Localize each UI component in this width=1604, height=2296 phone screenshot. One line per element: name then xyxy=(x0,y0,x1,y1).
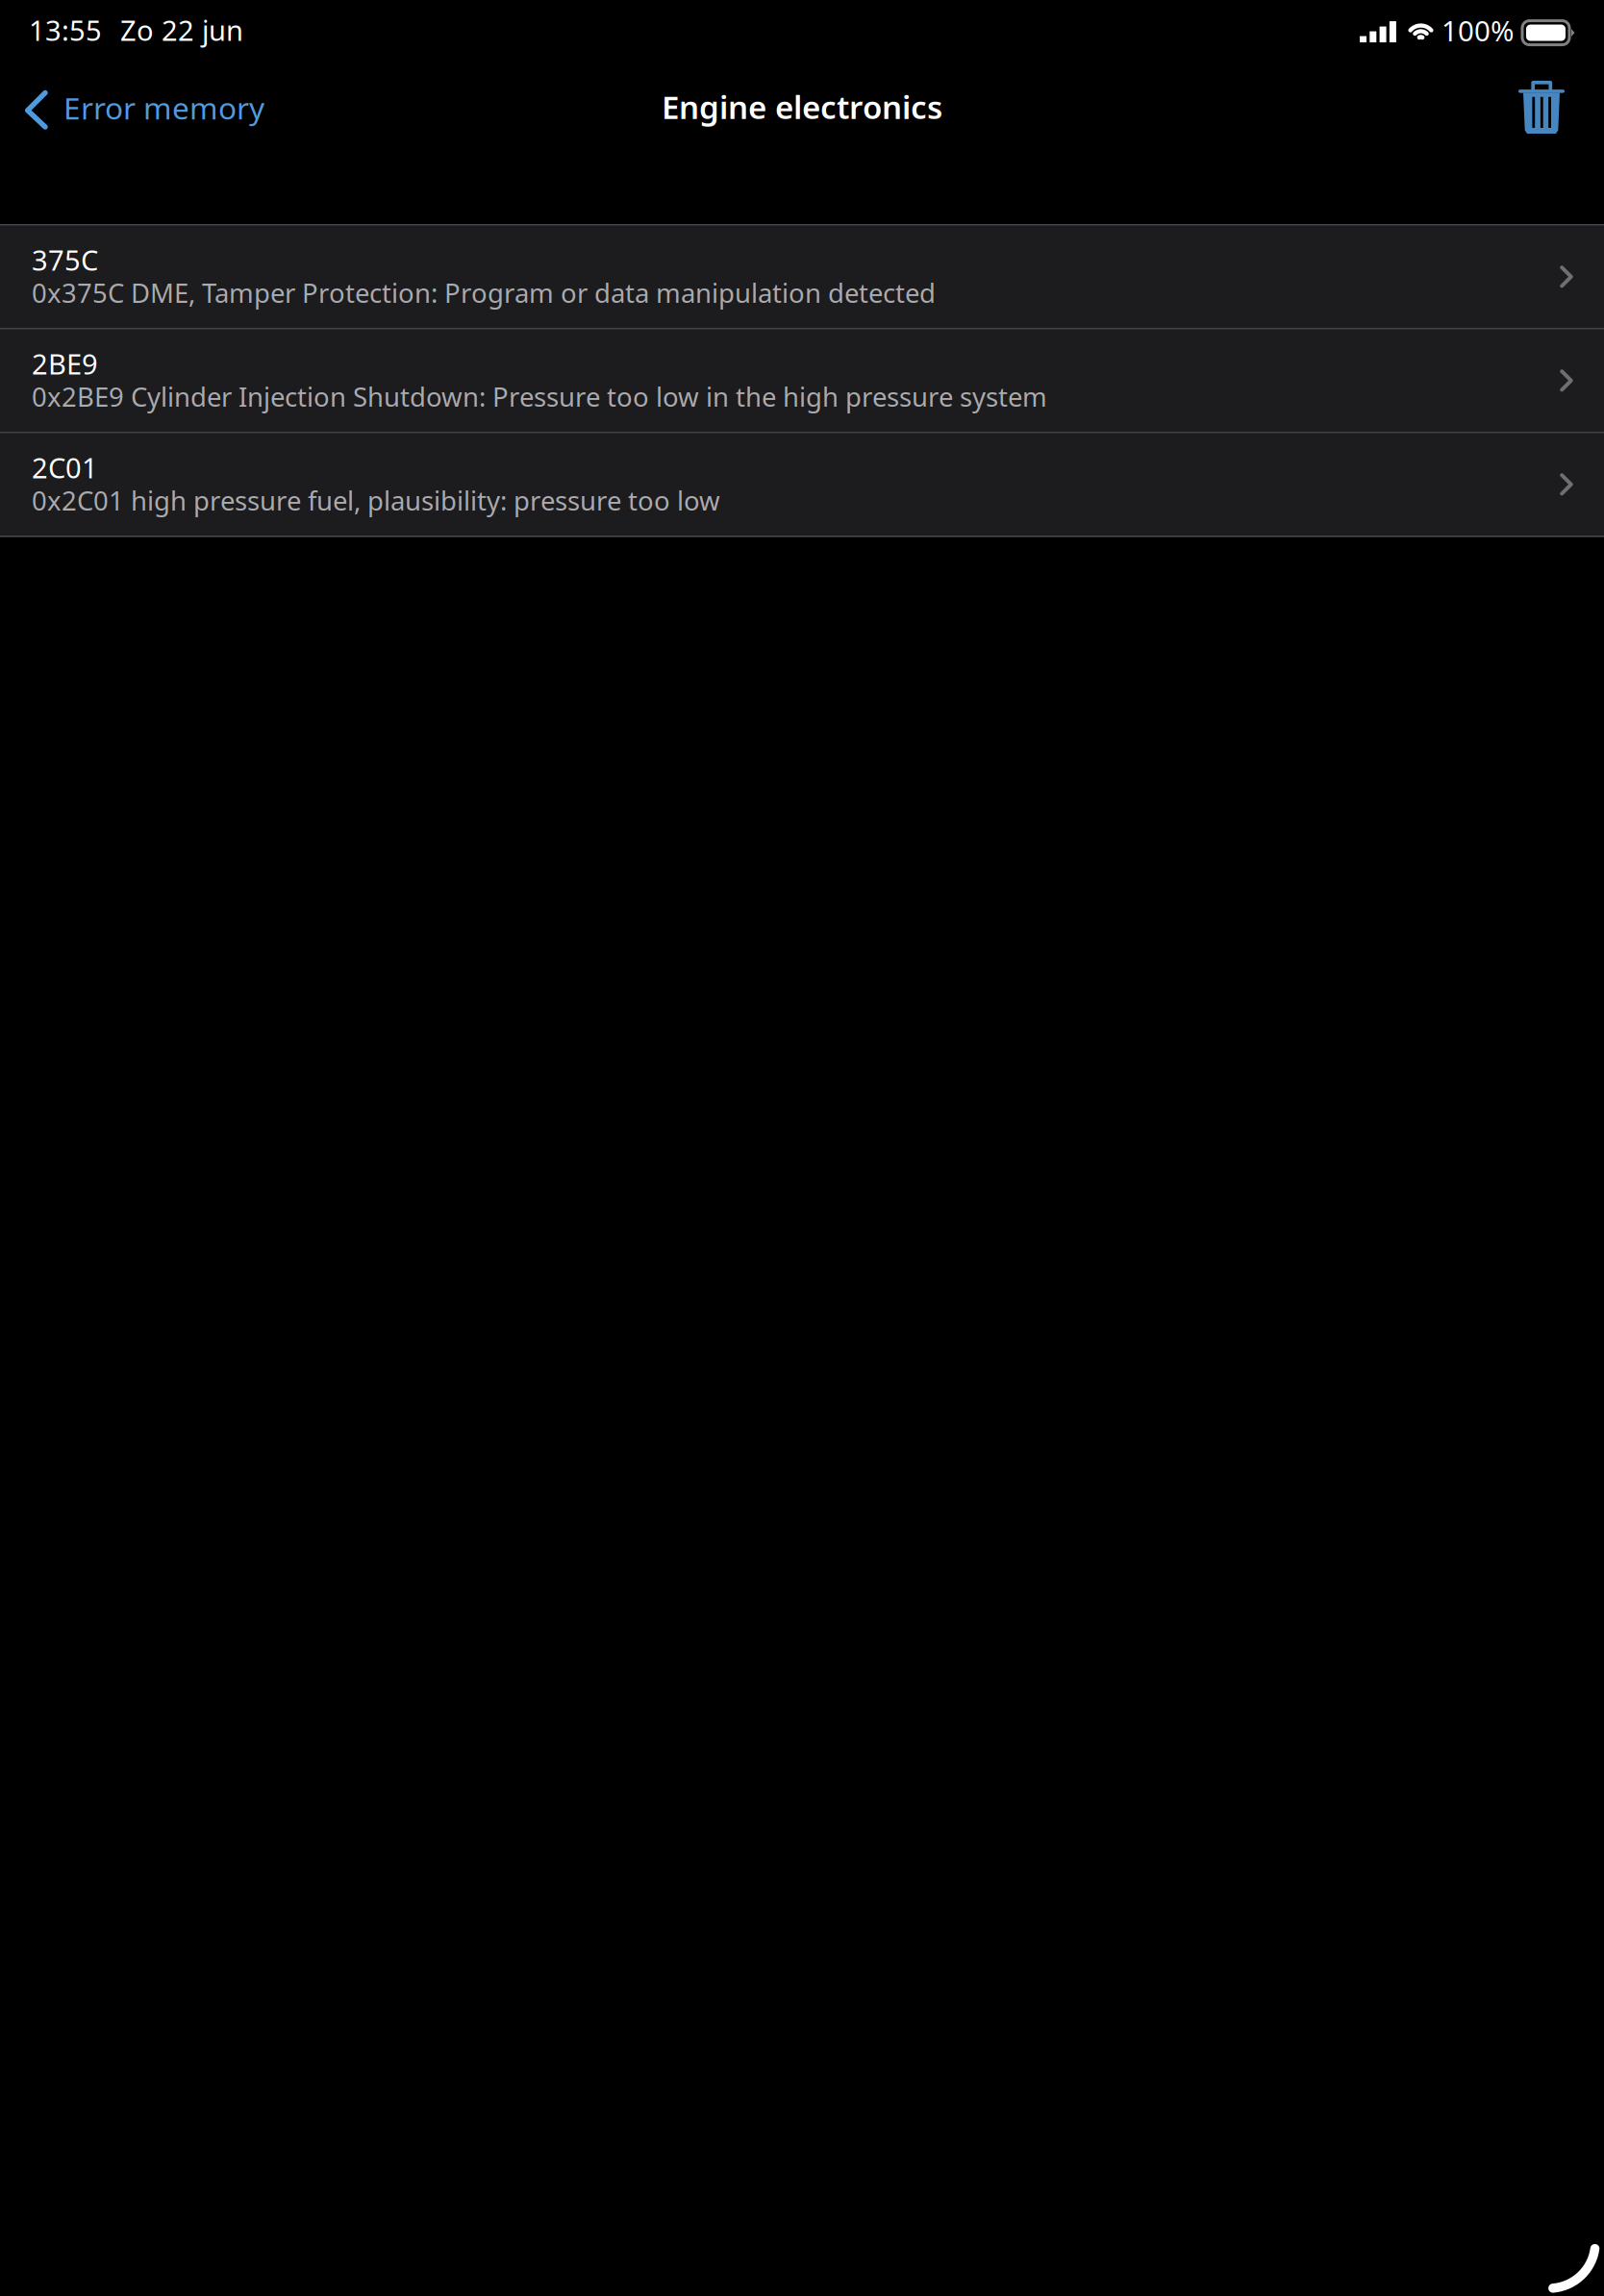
staticText: Engine electronics xyxy=(662,86,942,128)
staticText: 13:55 xyxy=(29,12,102,49)
staticText: 2C01 xyxy=(32,449,98,486)
staticText: 2BE9 xyxy=(32,345,98,382)
staticText: 0x2C01 high pressure fuel, plausibility:… xyxy=(32,483,720,518)
staticText: 375C xyxy=(32,241,98,278)
staticText: 100% xyxy=(1441,12,1514,49)
staticText: 0x2BE9 Cylinder Injection Shutdown: Pres… xyxy=(32,379,1047,414)
button[interactable]: Error memory xyxy=(0,63,282,150)
button[interactable]: 2C01 xyxy=(0,434,1604,536)
button[interactable]: 2BE9 xyxy=(0,330,1604,432)
staticText: 0x375C DME, Tamper Protection: Program o… xyxy=(32,275,936,310)
staticText: Zo 22 jun xyxy=(120,12,243,49)
staticText: Error memory xyxy=(63,87,264,128)
button[interactable]: 375C xyxy=(0,226,1604,328)
button[interactable]: Clear fault memory xyxy=(1497,63,1604,150)
